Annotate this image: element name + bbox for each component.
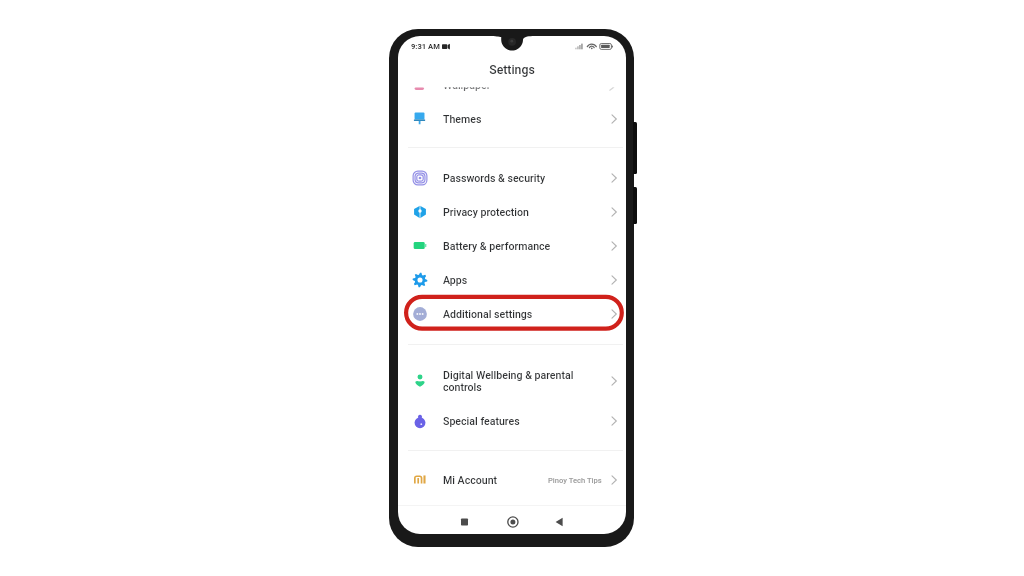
staticText: Mi Account [443,474,498,486]
staticText: Privacy protection [443,206,529,218]
button[interactable]: Additional settings [398,297,626,331]
button[interactable]: Themes [398,102,626,136]
button[interactable]: Apps [398,263,626,297]
staticText: 9:31 AM [411,42,440,51]
staticText: Passwords & security [443,172,546,184]
button[interactable]: Passwords & security [398,161,626,195]
button[interactable]: Battery & performance [398,229,626,263]
staticText: Additional settings [443,308,533,320]
button[interactable]: Back [550,513,568,531]
staticText: Wallpaper [443,79,491,91]
staticText: Battery & performance [443,240,551,252]
button[interactable]: Special features [398,404,626,438]
button[interactable]: Privacy protection [398,195,626,229]
button[interactable]: Wallpaper [398,78,626,94]
button[interactable]: Mi Account [398,463,626,497]
staticText: controls [443,381,482,393]
staticText: Apps [443,274,468,286]
staticText: Pinoy Tech Tips [548,476,602,485]
button[interactable]: Home [504,513,522,531]
staticText: Digital Wellbeing & parental [443,369,574,381]
button[interactable]: Recent apps [456,513,474,531]
staticText: Themes [443,113,482,125]
button[interactable]: Digital Wellbeing & parental [398,362,626,400]
staticText: Special features [443,415,520,427]
staticText: Settings [398,63,626,77]
